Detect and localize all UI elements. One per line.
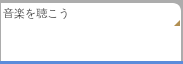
button[interactable]: 音楽を聴こう <box>0 0 183 64</box>
other: Dropdown <box>174 20 180 26</box>
staticText: 音楽を聴こう <box>3 6 70 20</box>
